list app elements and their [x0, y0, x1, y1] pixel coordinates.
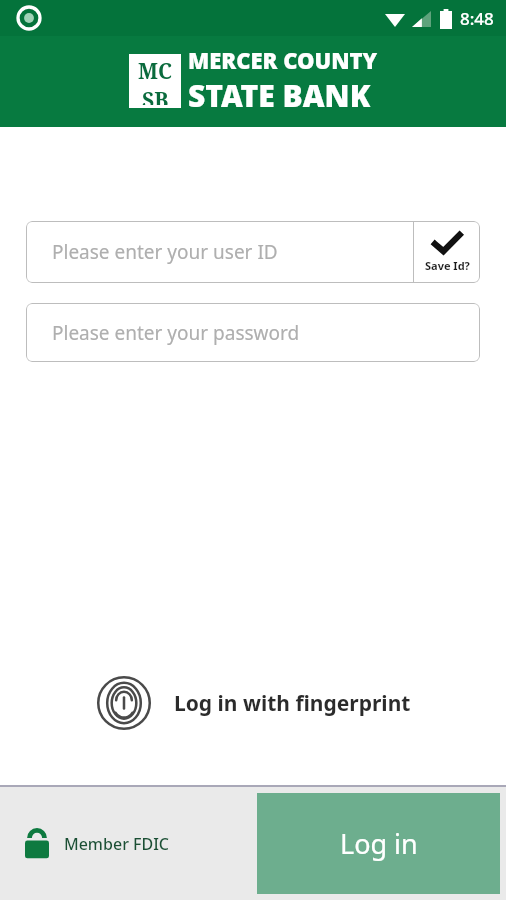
- button[interactable]: Save Id checkmark: [414, 221, 480, 283]
- other: Save Id checkmark: [432, 232, 462, 256]
- staticText: 8:48: [460, 7, 494, 30]
- staticText: MERCER COUNTY: [188, 45, 378, 75]
- button[interactable]: Please enter your user ID: [26, 221, 480, 283]
- button[interactable]: Log in: [257, 793, 500, 894]
- staticText: SB: [142, 86, 169, 105]
- other: Secure: [22, 827, 52, 861]
- staticText: MC: [138, 57, 173, 86]
- staticText: Please enter your password: [52, 320, 300, 346]
- staticText: Save Id?: [425, 258, 470, 273]
- button[interactable]: Secure: [22, 827, 170, 861]
- staticText: Member FDIC: [64, 833, 170, 855]
- button[interactable]: Please enter your password: [26, 303, 480, 362]
- staticText: Please enter your user ID: [52, 239, 278, 265]
- button[interactable]: Fingerprint: [0, 665, 506, 741]
- staticText: Log in with fingerprint: [174, 689, 411, 718]
- staticText: Log in: [340, 825, 418, 862]
- staticText: STATE BANK: [188, 75, 371, 116]
- other: Fingerprint: [96, 675, 152, 731]
